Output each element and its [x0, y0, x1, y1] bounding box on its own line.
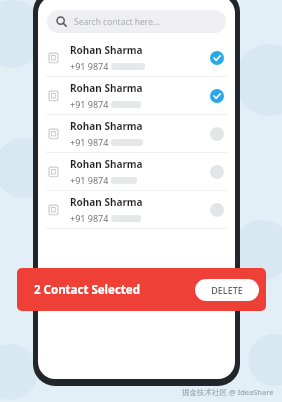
staticText: Rohan Sharma: [70, 81, 143, 95]
staticText: +91 9874: [70, 98, 109, 110]
staticText: +91 9874: [70, 212, 109, 224]
staticText: Rohan Sharma: [70, 157, 143, 171]
button[interactable]: Not selected: [208, 201, 225, 218]
staticText: Rohan Sharma: [70, 119, 143, 133]
staticText: Rohan Sharma: [70, 195, 143, 209]
staticText: +91 9874: [70, 136, 109, 148]
staticText: DELETE: [211, 284, 243, 296]
button[interactable]: Selected: [208, 87, 225, 104]
button[interactable]: Rohan Sharma: [38, 115, 235, 152]
staticText: 掘金技术社区 @ IdeaShare: [182, 387, 274, 397]
button[interactable]: Rohan Sharma: [38, 39, 235, 76]
staticText: +91 9874: [70, 60, 109, 72]
button[interactable]: Rohan Sharma: [38, 153, 235, 190]
button[interactable]: Not selected: [208, 125, 225, 142]
staticText: 2 Contact Selected: [34, 282, 140, 298]
button[interactable]: Rohan Sharma: [38, 191, 235, 228]
button[interactable]: Search contact here...: [47, 10, 226, 33]
button[interactable]: DELETE: [195, 279, 259, 301]
staticText: Rohan Sharma: [70, 43, 143, 57]
staticText: +91 9874: [70, 174, 109, 186]
button[interactable]: Rohan Sharma: [38, 77, 235, 114]
staticText: Search contact here...: [74, 16, 160, 28]
button[interactable]: Not selected: [208, 163, 225, 180]
button[interactable]: Selected: [208, 49, 225, 66]
